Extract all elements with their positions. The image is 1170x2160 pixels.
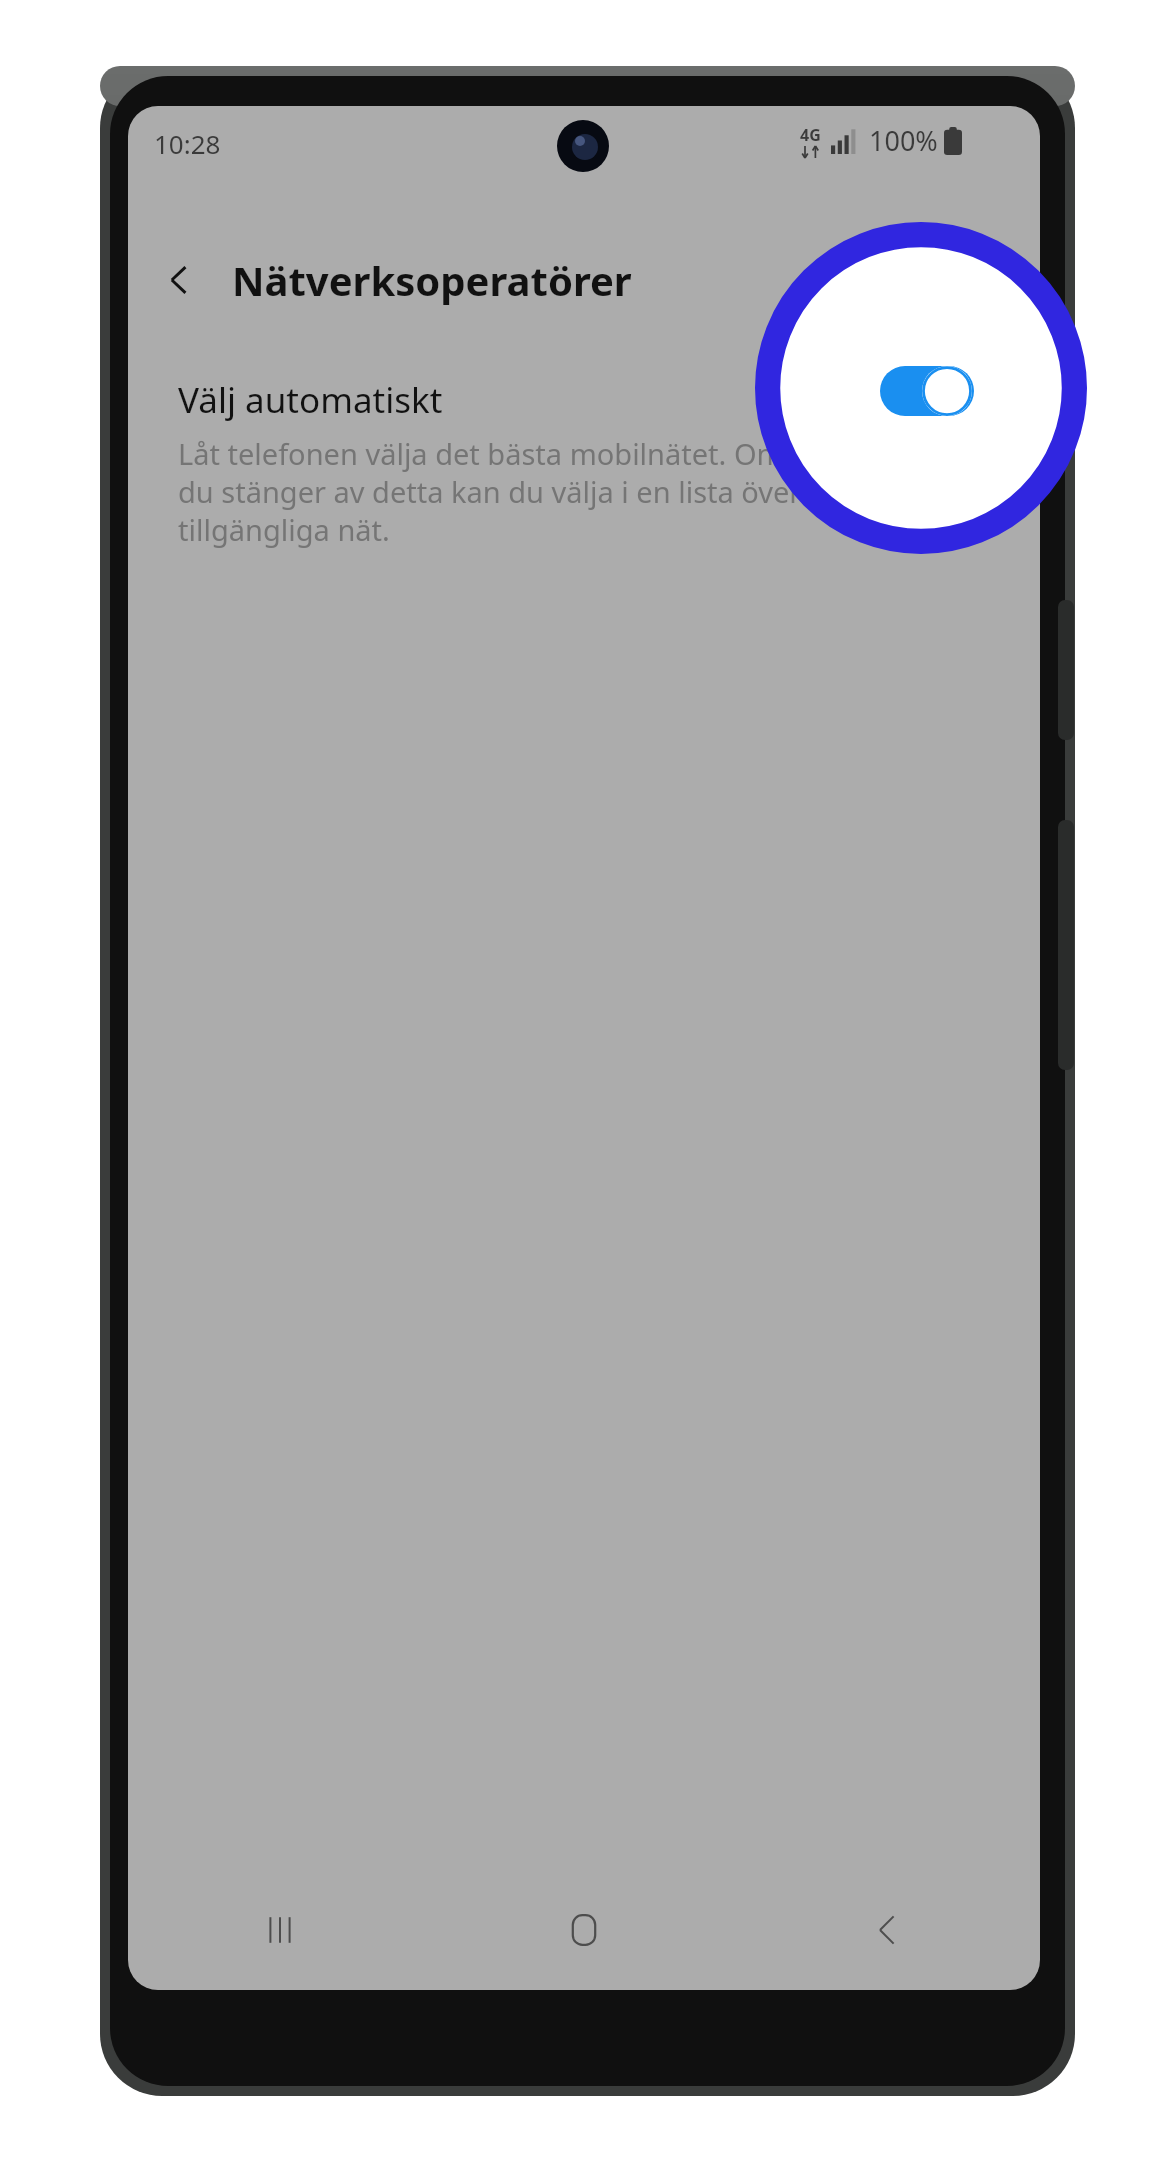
staticText: 4G [800, 124, 821, 146]
button[interactable]: Välj automatiskt toggle [880, 366, 974, 416]
staticText: 10:28 [154, 126, 221, 161]
button[interactable]: Home [432, 1880, 736, 1980]
button[interactable]: Recents [128, 1880, 432, 1980]
staticText: Nätverksoperatörer [232, 253, 632, 307]
button[interactable]: Välj automatiskt [178, 376, 818, 549]
button[interactable]: Back [736, 1880, 1040, 1980]
staticText: Låt telefonen välja det bästa mobilnätet… [178, 434, 818, 549]
staticText: 100% [869, 122, 938, 159]
button[interactable]: Back [150, 244, 210, 316]
staticText: Välj automatiskt [178, 376, 443, 424]
